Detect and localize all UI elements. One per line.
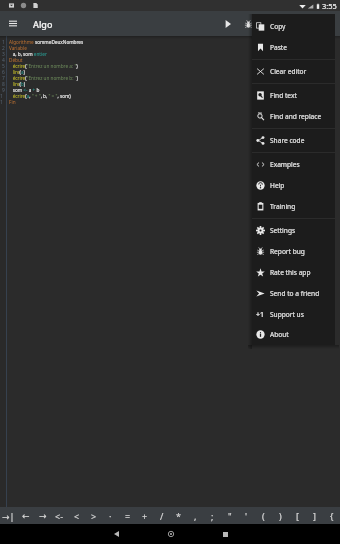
button[interactable]: ,	[187, 507, 204, 524]
button[interactable]: Back	[106, 524, 126, 544]
button[interactable]: <	[68, 507, 85, 524]
staticText: 1	[2, 39, 5, 45]
button[interactable]: Open navigation drawer	[0, 11, 25, 36]
staticText: écrire("Entrez un nombre b: ")	[9, 75, 78, 81]
staticText: About	[270, 330, 289, 339]
button[interactable]: Examples	[252, 154, 335, 175]
staticText: Find text	[270, 91, 297, 100]
staticText: /	[160, 510, 164, 522]
button[interactable]: Report bug	[252, 241, 335, 262]
staticText: =	[125, 510, 131, 522]
staticText: Settings	[270, 226, 296, 235]
staticText: Training	[270, 202, 296, 211]
button[interactable]: Rate this app	[252, 262, 335, 283]
button[interactable]: +	[136, 507, 153, 524]
button[interactable]: ←	[17, 507, 34, 524]
button[interactable]: {	[323, 507, 340, 524]
staticText: ]	[313, 510, 316, 522]
button[interactable]: Home	[161, 524, 181, 544]
staticText: ·	[109, 510, 112, 522]
staticText: Début	[9, 57, 23, 63]
button[interactable]: →	[34, 507, 51, 524]
staticText: écrire("Entrez un nombre a: ")	[9, 63, 78, 69]
staticText: écrire(a, " + ", b, " = ", som)	[9, 93, 71, 99]
staticText: Support us	[270, 310, 304, 319]
staticText: 7	[2, 75, 5, 81]
staticText: Clear editor	[270, 67, 307, 76]
button[interactable]: Recent apps	[215, 524, 235, 544]
staticText: 3:55	[322, 1, 337, 11]
staticText: Algorithme sommeDeuxNombres	[9, 39, 84, 45]
staticText: Report bug	[270, 247, 305, 256]
button[interactable]: (	[255, 507, 272, 524]
staticText: →|	[2, 510, 15, 522]
staticText: +	[142, 510, 148, 522]
staticText: Algo	[33, 18, 53, 30]
staticText: >	[91, 510, 97, 522]
staticText: Share code	[270, 136, 305, 145]
button[interactable]: >	[85, 507, 102, 524]
staticText: 2	[2, 45, 5, 51]
staticText: <	[74, 510, 80, 522]
button[interactable]: ·	[102, 507, 119, 524]
button[interactable]: Paste	[252, 37, 335, 58]
staticText: 10	[0, 93, 5, 99]
staticText: ←	[22, 511, 30, 521]
staticText: ;	[211, 510, 214, 522]
staticText: lire(b)	[9, 81, 26, 87]
staticText: {	[330, 510, 334, 522]
button[interactable]: Find and replace	[252, 106, 335, 127]
staticText: Examples	[270, 160, 300, 169]
button[interactable]: Share code	[252, 130, 335, 151]
staticText: Copy	[270, 22, 286, 31]
button[interactable]: Find text	[252, 85, 335, 106]
button[interactable]: +1	[252, 304, 335, 325]
button[interactable]: <-	[51, 507, 68, 524]
staticText: 11	[0, 99, 5, 105]
staticText: +1	[256, 310, 265, 319]
button[interactable]: =	[119, 507, 136, 524]
button[interactable]: →|	[0, 507, 17, 524]
staticText: 4	[2, 57, 5, 63]
staticText: 3	[2, 51, 5, 57]
button[interactable]: Send to a friend	[252, 283, 335, 304]
staticText: "	[228, 510, 232, 522]
button[interactable]: Copy	[252, 16, 335, 37]
button[interactable]: Run	[218, 14, 238, 34]
button[interactable]: )	[272, 507, 289, 524]
button[interactable]: ]	[306, 507, 323, 524]
staticText: som <- a + b	[9, 87, 40, 93]
staticText: Find and replace	[270, 112, 322, 121]
staticText: 8	[2, 81, 5, 87]
staticText: a, b, som entier	[9, 51, 47, 57]
staticText: Paste	[270, 43, 287, 52]
button[interactable]: Settings	[252, 220, 335, 241]
staticText: (	[262, 510, 265, 522]
staticText: lire(a)	[9, 69, 26, 75]
staticText: )	[279, 510, 282, 522]
button[interactable]: [	[289, 507, 306, 524]
staticText: Help	[270, 181, 285, 190]
staticText: [	[296, 510, 299, 522]
staticText: Send to a friend	[270, 289, 320, 298]
button[interactable]: "	[221, 507, 238, 524]
staticText: Variable	[9, 45, 27, 51]
staticText: 6	[2, 69, 5, 75]
staticText: *	[176, 510, 181, 522]
button[interactable]: Help	[252, 175, 335, 196]
staticText: Rate this app	[270, 268, 311, 277]
staticText: Fin	[9, 99, 16, 105]
button[interactable]: About	[252, 325, 335, 344]
button[interactable]: Training	[252, 196, 335, 217]
staticText: ,	[194, 510, 197, 522]
staticText: <-	[55, 510, 64, 522]
staticText: 9	[2, 87, 5, 93]
button[interactable]: ;	[204, 507, 221, 524]
button[interactable]: '	[238, 507, 255, 524]
button[interactable]: *	[170, 507, 187, 524]
staticText: 5	[2, 63, 5, 69]
staticText: '	[245, 510, 248, 522]
button[interactable]: Debug	[238, 14, 258, 34]
button[interactable]: /	[153, 507, 170, 524]
button[interactable]: Clear editor	[252, 61, 335, 82]
